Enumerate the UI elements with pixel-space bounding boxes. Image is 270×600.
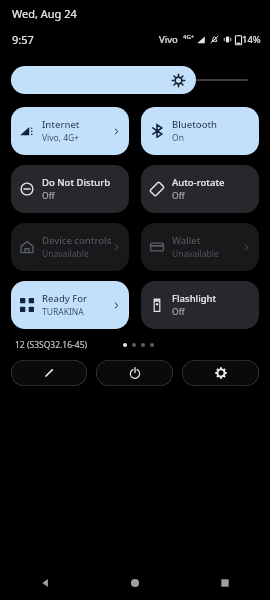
button[interactable]: Bluetooth	[141, 107, 259, 155]
button[interactable]: Back	[0, 566, 90, 600]
staticText: Unavailable	[172, 248, 219, 260]
staticText: Device controls	[42, 234, 112, 247]
button[interactable]: Recents	[180, 566, 270, 600]
staticText: Unavailable	[42, 248, 89, 260]
button[interactable]: Edit tiles	[11, 360, 87, 386]
staticText: Off	[172, 190, 185, 202]
button[interactable]: Do Not Disturb	[11, 165, 129, 213]
button[interactable]: Device controls	[11, 223, 129, 271]
staticText: 9:57	[12, 32, 34, 47]
staticText: On	[172, 132, 184, 144]
staticText: Wed, Aug 24	[12, 6, 77, 21]
button[interactable]: Settings	[182, 360, 259, 386]
staticText: Wallet	[172, 234, 201, 247]
staticText: Flashlight	[172, 292, 217, 305]
staticText: Bluetooth	[172, 118, 218, 131]
staticText: Off	[172, 306, 185, 318]
button[interactable]: Auto-rotate	[141, 165, 259, 213]
button[interactable]: Power	[96, 360, 173, 386]
staticText: Vivo	[159, 33, 178, 46]
staticText: 4G+	[183, 33, 195, 41]
staticText: Ready For	[42, 292, 88, 305]
staticText: TURAKINA	[42, 306, 84, 318]
staticText: Internet	[42, 118, 80, 131]
staticText: Vivo, 4G+	[42, 132, 80, 144]
staticText: Auto-rotate	[172, 176, 225, 189]
button[interactable]: Home	[90, 566, 180, 600]
button[interactable]: Ready For	[11, 281, 129, 329]
button[interactable]: Brightness	[0, 65, 270, 95]
staticText: Do Not Disturb	[42, 176, 111, 189]
button[interactable]: Wallet	[141, 223, 259, 271]
button[interactable]: Flashlight	[141, 281, 259, 329]
staticText: 12 (S3SQ32.16-45)	[15, 339, 88, 351]
staticText: 14%	[242, 33, 261, 46]
staticText: Off	[42, 190, 55, 202]
button[interactable]: Internet	[11, 107, 129, 155]
